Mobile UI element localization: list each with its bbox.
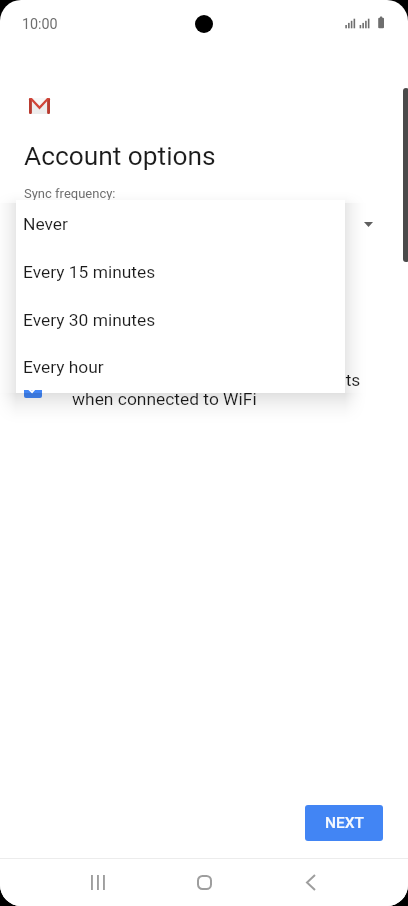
button[interactable]: Never (16, 200, 345, 248)
staticText: Automatically download attachments when … (72, 370, 361, 410)
staticText: Never (23, 214, 68, 234)
staticText: Account options (24, 141, 216, 172)
button[interactable]: NEXT (305, 805, 383, 841)
staticText: Every 15 minutes (23, 262, 156, 282)
button[interactable]: Every hour (16, 344, 345, 390)
staticText: 10:00 (22, 16, 58, 33)
button[interactable]: Recent apps (72, 858, 118, 906)
button[interactable]: Home (181, 858, 227, 906)
other: Gmail (29, 98, 50, 114)
staticText: Every 30 minutes (23, 310, 156, 330)
button[interactable]: Every 30 minutes (16, 296, 345, 344)
staticText: Every hour (23, 357, 104, 377)
button[interactable]: Automatically download attachments when … (24, 370, 408, 410)
button[interactable]: Sync frequency (24, 203, 380, 247)
staticText: Sync frequency: (24, 186, 116, 201)
button[interactable]: Back (288, 858, 334, 906)
button[interactable]: Every 15 minutes (16, 248, 345, 296)
staticText: NEXT (325, 814, 364, 832)
